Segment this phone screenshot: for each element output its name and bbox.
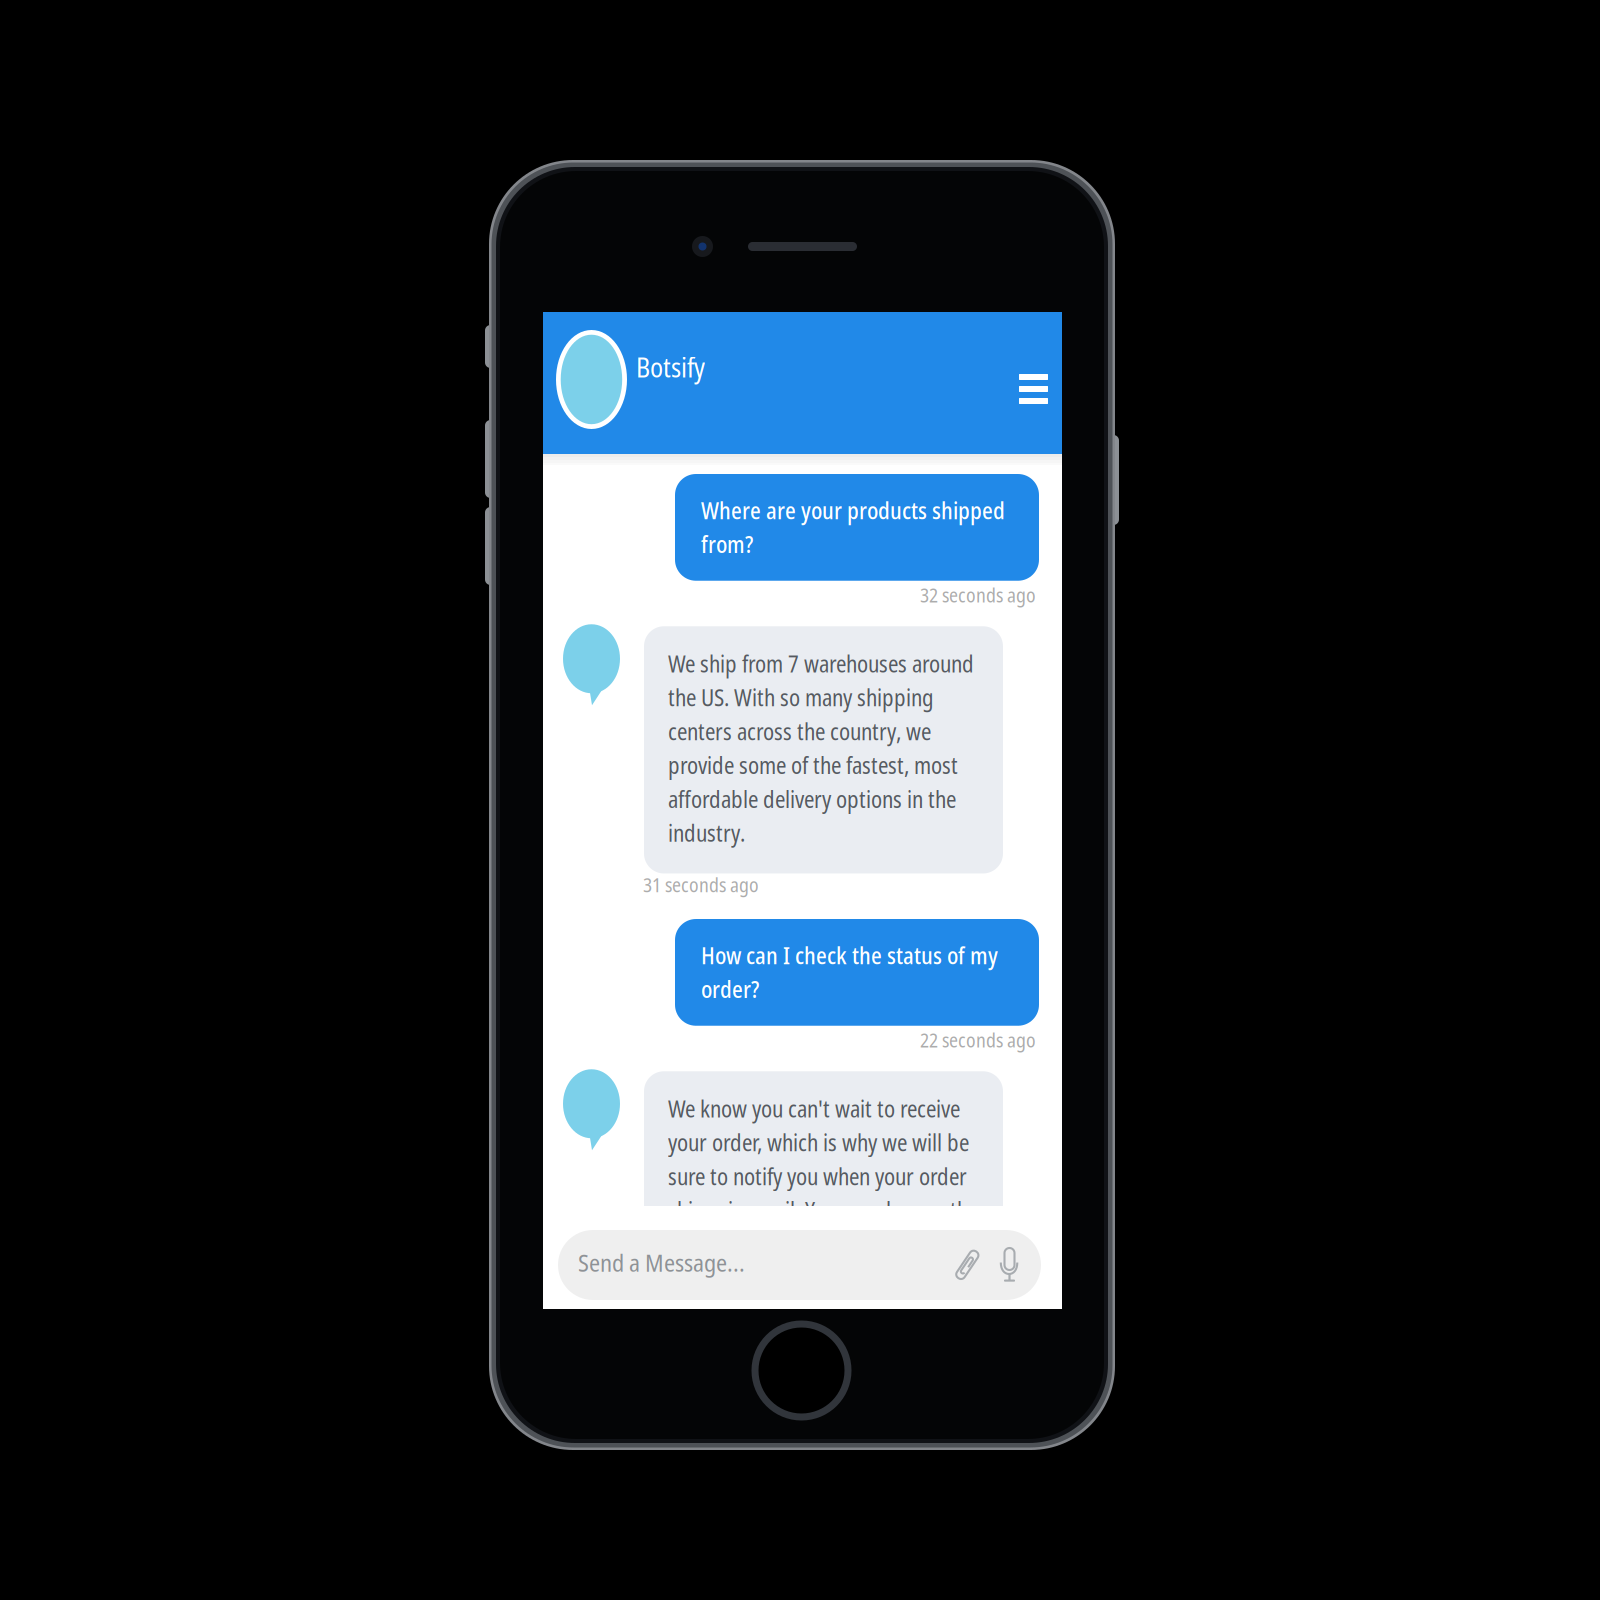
staticText: Send a Message... [578, 1246, 745, 1279]
staticText: How can I check the status of my order? [701, 940, 998, 1005]
staticText: 22 seconds ago [920, 1027, 1036, 1053]
staticText: Botsify [636, 349, 705, 385]
button[interactable]: Menu [1010, 365, 1057, 413]
staticText: Where are your products shipped from? [701, 495, 1005, 560]
staticText: We know you can't wait to receive your o… [668, 1093, 978, 1293]
staticText: 32 seconds ago [920, 582, 1036, 608]
button[interactable]: Send a Message... [558, 1230, 1041, 1300]
staticText: 31 seconds ago [643, 871, 759, 898]
staticText: We ship from 7 warehouses around the US.… [668, 648, 974, 848]
